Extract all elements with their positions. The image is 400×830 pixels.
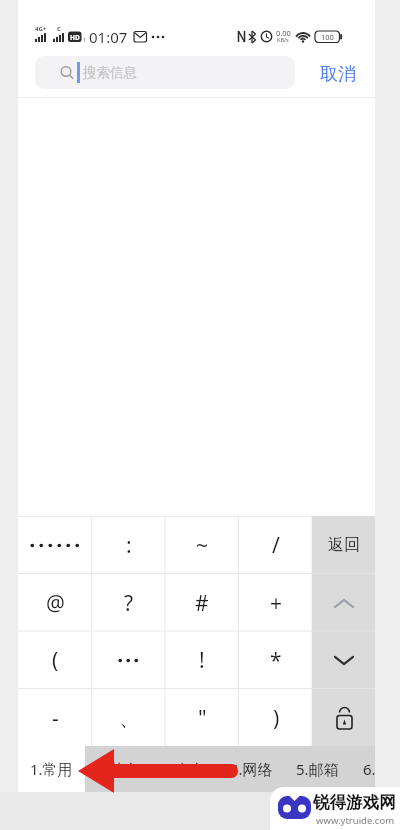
staticText: @ [46,589,65,618]
staticText: C [57,25,61,32]
button[interactable] [312,574,375,632]
button[interactable]: 锐得游戏网 [270,787,400,830]
staticText: 1 [83,36,87,44]
staticText: ? [124,589,134,618]
staticText: 100 [321,32,334,42]
staticText: 01:07 [89,27,128,45]
button[interactable]: / [239,516,313,574]
button[interactable]: + [239,574,313,632]
button[interactable]: 、 [92,689,166,747]
staticText: 6.符号 [363,759,400,779]
staticText: 0.00 [276,28,291,37]
button[interactable]: ) [239,689,313,747]
button[interactable]: ~ [165,516,239,574]
button[interactable]: 4.网络 [217,746,285,792]
staticText: * [270,646,282,675]
button[interactable]: * [239,631,313,689]
staticText: 搜索信息 [83,64,137,81]
staticText: ( [52,646,59,675]
staticText: 4G+ [35,25,47,32]
button[interactable] [312,631,375,689]
button[interactable]: @ [18,574,92,632]
staticText: ) [273,704,280,733]
button[interactable]: 搜索信息 [35,56,295,89]
staticText: www.ytruide.com [316,814,395,827]
staticText: HD [70,33,80,42]
staticText: 4.网络 [230,759,273,779]
staticText: - [52,704,59,733]
staticText: KB/s [277,36,289,43]
button[interactable] [18,516,92,574]
staticText: 、 [119,705,140,731]
staticText: " [198,704,207,733]
button[interactable]: : [92,516,166,574]
button[interactable]: - [18,689,92,747]
button[interactable]: ? [92,574,166,632]
button[interactable] [312,689,375,747]
button[interactable]: 取消 [317,62,358,87]
button[interactable]: " [165,689,239,747]
staticText: 3.中文 [163,759,206,779]
staticText: 锐得游戏网 [313,792,396,813]
staticText: # [195,589,209,618]
staticText: + [270,589,283,618]
staticText: 返回 [328,535,360,555]
staticText: 1.常用 [30,759,73,779]
button[interactable]: # [165,574,239,632]
button[interactable]: 6.符号 [350,746,400,792]
staticText: : [126,531,132,560]
staticText: 2.英文 [97,759,140,779]
button[interactable] [92,631,166,689]
button[interactable]: ( [18,631,92,689]
button[interactable]: 2.英文 [84,746,152,792]
button[interactable]: 返回 [312,516,375,574]
button[interactable]: ! [165,631,239,689]
staticText: 取消 [320,63,356,86]
button[interactable]: 1.常用 [18,746,85,792]
staticText: / [272,531,280,560]
button[interactable]: 3.中文 [150,746,218,792]
staticText: ~ [196,531,209,560]
button[interactable]: 5.邮箱 [283,746,351,792]
staticText: ! [199,646,205,675]
staticText: 5.邮箱 [296,759,339,779]
